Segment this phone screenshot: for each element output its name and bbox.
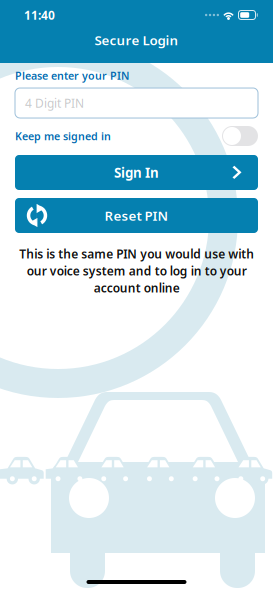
button[interactable]: Reset PIN xyxy=(15,198,258,233)
staticText: Sign In xyxy=(114,164,159,181)
staticText: 11:40 xyxy=(24,7,55,23)
button[interactable]: Sign In xyxy=(15,155,258,190)
button[interactable]: Keep me signed in xyxy=(222,126,258,146)
staticText: 4 Digit PIN xyxy=(25,95,84,111)
staticText: Please enter your PIN xyxy=(15,68,129,83)
staticText: This is the same PIN you would use with … xyxy=(19,246,254,296)
staticText: Keep me signed in xyxy=(15,129,111,143)
staticText: Reset PIN xyxy=(104,207,168,224)
staticText: Secure Login xyxy=(94,31,178,49)
